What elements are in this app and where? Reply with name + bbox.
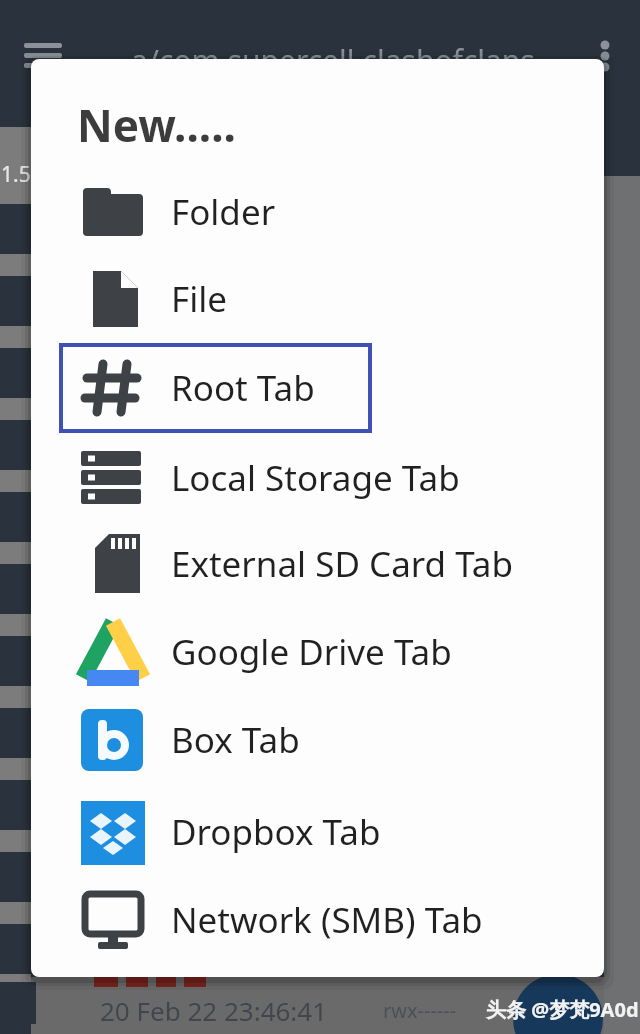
staticText: External SD Card Tab: [171, 540, 514, 588]
staticText: Folder: [171, 188, 276, 236]
button[interactable]: Folder: [31, 168, 604, 256]
button[interactable]: Root Tab: [31, 344, 604, 432]
staticText: 头条 @梦梵9A0d: [486, 996, 639, 1023]
staticText: File: [171, 275, 227, 323]
staticText: New.....: [77, 95, 236, 155]
button[interactable]: Google Drive Tab: [31, 608, 604, 696]
staticText: Root Tab: [171, 364, 315, 412]
staticText: 20 Feb 22 23:46:41: [100, 993, 328, 1028]
button[interactable]: Dropbox Tab: [31, 788, 604, 876]
staticText: Dropbox Tab: [171, 808, 381, 856]
button[interactable]: Local Storage Tab: [31, 434, 604, 522]
staticText: a/com.supercell.clashofclans: [131, 40, 535, 81]
staticText: Network (SMB) Tab: [171, 896, 483, 944]
button[interactable]: Box Tab: [31, 696, 604, 784]
staticText: Local Storage Tab: [171, 454, 460, 502]
button[interactable]: External SD Card Tab: [31, 520, 604, 608]
button[interactable]: File: [31, 255, 604, 343]
button[interactable]: Network (SMB) Tab: [31, 876, 604, 964]
staticText: Google Drive Tab: [171, 628, 452, 676]
staticText: Box Tab: [171, 716, 300, 764]
staticText: rwx------: [383, 997, 457, 1024]
staticText: 1.5: [1, 160, 31, 189]
